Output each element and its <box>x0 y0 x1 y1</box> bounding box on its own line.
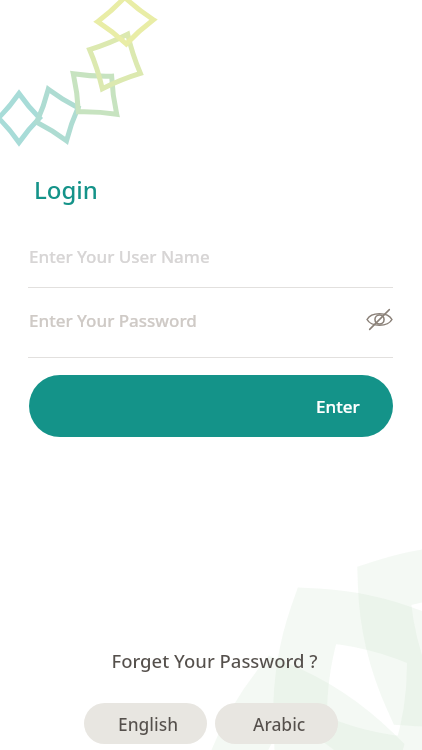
staticText: Forget Your Password ? <box>111 648 318 673</box>
button[interactable]: English <box>84 703 207 744</box>
button[interactable]: Show password <box>362 302 397 337</box>
staticText: Enter Your User Name <box>29 245 210 268</box>
staticText: English <box>118 712 179 736</box>
button[interactable]: Forget Your Password ? <box>3 645 422 675</box>
staticText: Arabic <box>253 712 306 736</box>
button[interactable]: Arabic <box>215 703 338 744</box>
staticText: Enter <box>316 395 360 418</box>
staticText: Enter Your Password <box>29 309 197 332</box>
staticText: Login <box>34 173 98 206</box>
button[interactable]: Enter <box>29 375 393 437</box>
